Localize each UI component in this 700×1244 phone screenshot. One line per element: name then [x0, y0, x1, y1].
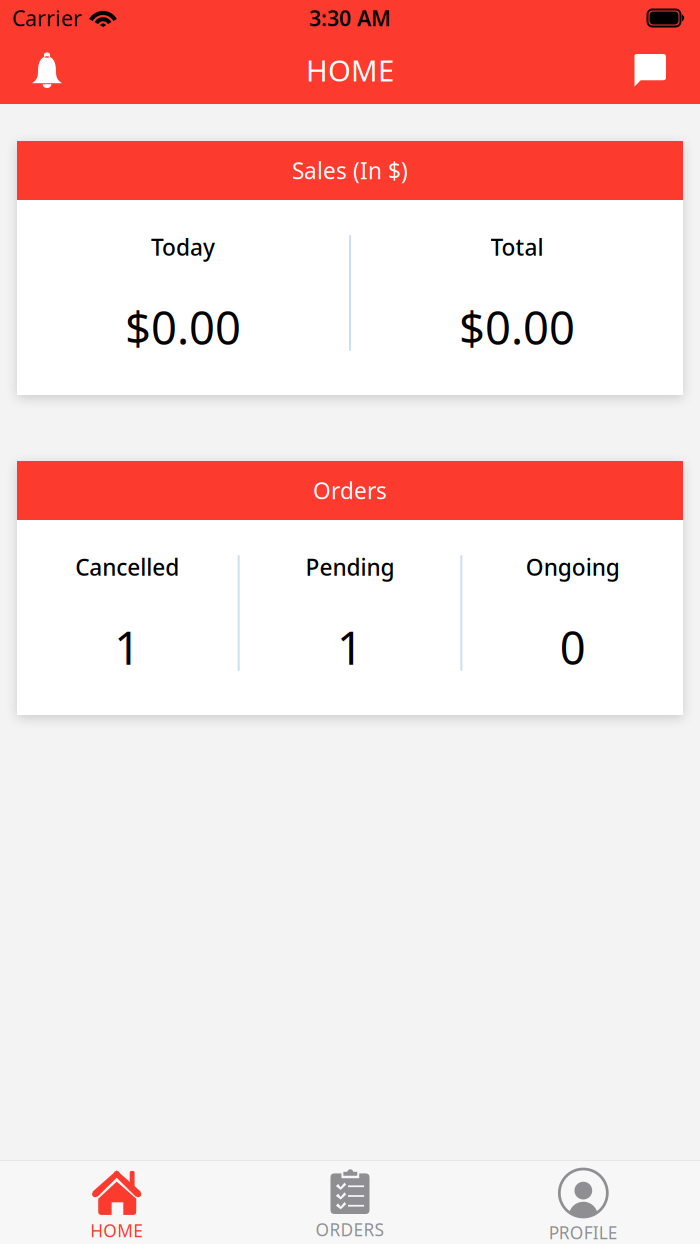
staticText: Orders — [313, 475, 387, 505]
staticText: Total — [490, 232, 543, 262]
staticText: 3:30 AM — [309, 4, 391, 32]
staticText: PROFILE — [549, 1221, 618, 1244]
button[interactable]: Notifications — [19, 40, 75, 100]
button[interactable]: ORDERS — [233, 1161, 467, 1244]
staticText: Carrier — [12, 4, 82, 32]
staticText: HOME — [90, 1219, 143, 1242]
staticText: 0 — [560, 617, 586, 677]
staticText: Ongoing — [526, 552, 620, 582]
staticText: Cancelled — [75, 552, 179, 582]
staticText: Today — [151, 232, 215, 262]
staticText: ORDERS — [315, 1218, 384, 1241]
staticText: Pending — [305, 552, 394, 582]
staticText: Sales (In $) — [292, 155, 408, 185]
staticText: $0.00 — [459, 297, 575, 357]
staticText: HOME — [306, 50, 394, 89]
staticText: $0.00 — [125, 297, 241, 357]
button[interactable]: PROFILE — [467, 1161, 700, 1244]
staticText: 1 — [337, 617, 363, 677]
button[interactable]: HOME — [0, 1161, 233, 1244]
button[interactable]: Messages — [619, 40, 681, 100]
staticText: 1 — [114, 617, 140, 677]
